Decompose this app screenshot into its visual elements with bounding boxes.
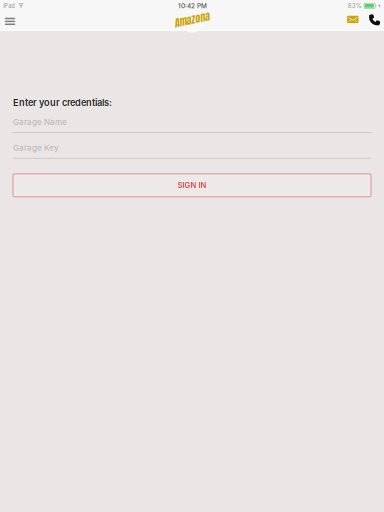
staticText: SIGN IN: [177, 181, 206, 190]
staticText: Garage Key: [13, 143, 59, 153]
button[interactable]: Email: [346, 14, 360, 30]
staticText: 83%: [348, 2, 362, 9]
staticText: 10:42 PM: [178, 2, 207, 10]
staticText: iPad: [3, 2, 15, 9]
button[interactable]: SIGN IN: [13, 174, 371, 197]
staticText: Amazona: [174, 12, 210, 27]
button[interactable]: Call: [368, 14, 381, 30]
button[interactable]: Menu: [5, 14, 15, 30]
staticText: Enter your credentials:: [13, 97, 112, 108]
staticText: Garage Name: [13, 117, 67, 127]
